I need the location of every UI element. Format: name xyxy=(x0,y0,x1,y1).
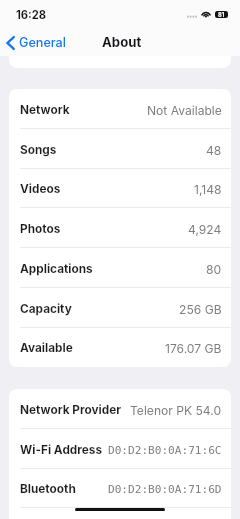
button[interactable]: Videos xyxy=(9,168,231,208)
button[interactable]: Available xyxy=(9,327,231,367)
staticText: 4,924 xyxy=(188,222,222,237)
staticText: Telenor PK 54.0 xyxy=(130,403,222,418)
staticText: Songs xyxy=(20,143,57,157)
button[interactable]: Bluetooth xyxy=(9,468,231,508)
staticText: Photos xyxy=(20,222,61,236)
staticText: D0:D2:B0:0A:71:6D xyxy=(108,483,222,496)
staticText: 1,148 xyxy=(194,182,222,197)
staticText: Capacity xyxy=(20,302,72,316)
staticText: 81 xyxy=(218,11,225,18)
staticText: Videos xyxy=(20,182,61,196)
staticText: 80 xyxy=(206,262,222,277)
button[interactable] xyxy=(9,508,231,519)
staticText: 48 xyxy=(206,143,222,158)
staticText: Network xyxy=(20,103,70,117)
staticText: Wi-Fi Address xyxy=(20,443,103,457)
button[interactable]: Network xyxy=(9,89,231,129)
staticText: 256 GB xyxy=(179,302,222,317)
button[interactable]: Photos xyxy=(9,208,231,248)
button[interactable]: Wi-Fi Address xyxy=(9,429,231,469)
staticText: Applications xyxy=(20,262,93,276)
staticText: 176.07 GB xyxy=(165,341,222,356)
button[interactable]: Applications xyxy=(9,248,231,288)
staticText: D0:D2:B0:0A:71:6C xyxy=(108,444,222,457)
staticText: General xyxy=(19,35,66,50)
button[interactable]: Capacity xyxy=(9,288,231,328)
button[interactable]: Network Provider xyxy=(9,389,231,429)
button[interactable]: Songs xyxy=(9,129,231,169)
staticText: 16:28 xyxy=(16,8,47,22)
staticText: Not Available xyxy=(147,103,222,118)
staticText: About xyxy=(102,34,142,50)
staticText: Available xyxy=(20,341,73,355)
button[interactable]: Back to General xyxy=(5,33,67,52)
staticText: Network Provider xyxy=(20,403,122,417)
staticText: Bluetooth xyxy=(20,482,76,496)
